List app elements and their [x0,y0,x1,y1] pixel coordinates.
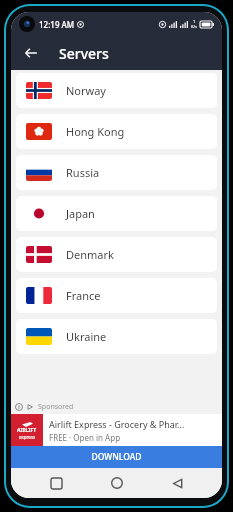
button[interactable]: Ukraine [16,319,217,354]
staticText: Denmark [66,247,114,262]
button[interactable]: France [16,278,217,313]
staticText: DOWNLOAD [91,451,142,463]
button[interactable]: Japan [16,196,217,231]
button[interactable]: AIRLIFT [11,414,222,446]
staticText: Sponsored [38,402,74,412]
staticText: K/s [191,24,197,29]
staticText: Airlift Express - Grocery & Phar... [49,418,185,430]
button[interactable]: Norway [16,73,217,108]
staticText: 12:19 AM [39,19,75,30]
staticText: express [19,434,36,440]
button[interactable]: Recents [41,468,71,498]
button[interactable]: Russia [16,155,217,190]
staticText: Japan [66,206,95,221]
staticText: 1 [193,19,196,24]
staticText: Norway [66,83,106,98]
button[interactable]: Back [162,468,192,498]
staticText: Servers [59,44,109,63]
staticText: Ukraine [66,329,107,344]
button[interactable]: Hong Kong [16,114,217,149]
button[interactable]: Back [17,39,45,67]
staticText: France [66,288,101,303]
button[interactable]: Denmark [16,237,217,272]
staticText: Russia [66,165,100,180]
staticText: AIRLIFT [17,427,37,434]
staticText: FREE · Open in App [49,432,121,443]
button[interactable]: DOWNLOAD [11,446,222,468]
staticText: Hong Kong [66,124,125,139]
button[interactable]: Home [102,468,132,498]
